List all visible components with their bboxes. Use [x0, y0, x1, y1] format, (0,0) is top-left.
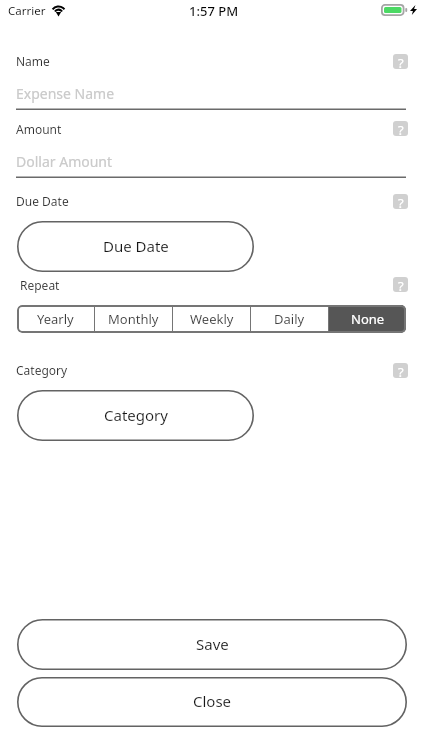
- staticText: ?: [398, 277, 404, 292]
- staticText: Due Date: [103, 236, 169, 256]
- button[interactable]: Help for Repeat: [393, 277, 408, 292]
- staticText: Dollar Amount: [16, 152, 113, 171]
- staticText: Daily: [274, 310, 305, 328]
- staticText: Yearly: [37, 310, 74, 328]
- staticText: Category: [16, 362, 68, 378]
- staticText: Save: [196, 634, 229, 654]
- staticText: ?: [398, 363, 404, 378]
- other: Charging: [410, 5, 417, 15]
- button[interactable]: Weekly: [173, 305, 250, 333]
- staticText: Amount: [16, 121, 62, 137]
- staticText: 1:57 PM: [189, 2, 239, 20]
- button[interactable]: Help for Name: [393, 54, 408, 69]
- staticText: Close: [193, 691, 232, 711]
- staticText: Carrier: [8, 3, 46, 19]
- staticText: ?: [398, 121, 404, 136]
- button[interactable]: Monthly: [95, 305, 172, 333]
- staticText: Repeat: [20, 277, 60, 293]
- button[interactable]: Close: [17, 677, 407, 727]
- button[interactable]: Help for Amount: [393, 121, 408, 136]
- staticText: ?: [398, 54, 404, 69]
- staticText: Category: [104, 405, 168, 425]
- button[interactable]: Save: [17, 619, 407, 670]
- staticText: Weekly: [190, 310, 234, 328]
- button[interactable]: Help for Due Date: [393, 194, 408, 209]
- staticText: ?: [398, 194, 404, 209]
- staticText: Name: [16, 53, 50, 69]
- staticText: Due Date: [16, 193, 69, 209]
- staticText: None: [351, 310, 385, 328]
- button[interactable]: Category: [17, 390, 254, 441]
- button[interactable]: Due Date: [17, 221, 254, 272]
- button[interactable]: None: [329, 305, 406, 333]
- staticText: Expense Name: [16, 84, 115, 103]
- button[interactable]: Help for Category: [393, 363, 408, 378]
- button[interactable]: Daily: [251, 305, 328, 333]
- other: Wi-Fi signal: [51, 1, 66, 16]
- other: Battery full: [381, 4, 408, 16]
- button[interactable]: Yearly: [17, 305, 94, 333]
- staticText: Monthly: [108, 310, 159, 328]
